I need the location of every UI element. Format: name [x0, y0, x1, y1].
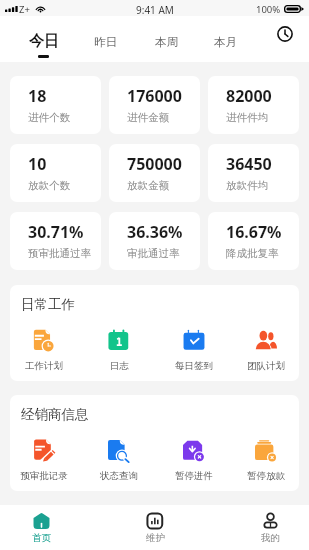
- staticText: 日常工作: [21, 296, 75, 313]
- staticText: 预审批记录: [20, 470, 68, 482]
- button[interactable]: 每日签到: [167, 321, 221, 373]
- staticText: 状态查询: [100, 470, 138, 482]
- button[interactable]: 10: [10, 144, 101, 202]
- staticText: 36450: [226, 153, 272, 175]
- button[interactable]: 暂停放款: [239, 431, 293, 483]
- button[interactable]: 工作计划: [17, 321, 71, 373]
- button[interactable]: 82000: [208, 76, 299, 134]
- button[interactable]: 30.71%: [10, 212, 101, 270]
- staticText: 18: [28, 85, 47, 107]
- staticText: 昨日: [94, 35, 117, 49]
- staticText: 放款件均: [226, 179, 268, 192]
- staticText: 进件件均: [226, 111, 268, 124]
- staticText: Z+: [19, 3, 30, 16]
- staticText: 经销商信息: [21, 406, 89, 423]
- button[interactable]: 今日: [27, 16, 61, 62]
- staticText: 暂停放款: [247, 470, 285, 482]
- button[interactable]: 暂停进件: [167, 431, 221, 483]
- staticText: 16.67%: [226, 221, 282, 243]
- staticText: 本月: [214, 35, 237, 49]
- button[interactable]: 36450: [208, 144, 299, 202]
- button[interactable]: 首页: [15, 505, 67, 550]
- button[interactable]: 团队计划: [239, 321, 293, 373]
- staticText: 首页: [32, 532, 51, 544]
- staticText: 750000: [127, 153, 182, 175]
- staticText: 工作计划: [25, 360, 63, 372]
- button[interactable]: 日志: [92, 321, 146, 373]
- staticText: 176000: [127, 85, 182, 107]
- button[interactable]: History: [276, 25, 293, 42]
- button[interactable]: 36.36%: [109, 212, 200, 270]
- staticText: 预审批通过率: [28, 247, 91, 260]
- button[interactable]: 预审批记录: [17, 431, 71, 483]
- button[interactable]: 我的: [244, 505, 296, 550]
- staticText: 100%: [256, 3, 281, 16]
- staticText: 放款个数: [28, 179, 70, 192]
- button[interactable]: 18: [10, 76, 101, 134]
- staticText: 日志: [110, 360, 129, 372]
- staticText: 9:41 AM: [136, 3, 174, 17]
- staticText: 30.71%: [28, 221, 84, 243]
- staticText: 10: [28, 153, 47, 175]
- button[interactable]: 750000: [109, 144, 200, 202]
- button[interactable]: 176000: [109, 76, 200, 134]
- button[interactable]: 本月: [210, 16, 240, 62]
- staticText: 团队计划: [247, 360, 285, 372]
- staticText: 进件金额: [127, 111, 169, 124]
- button[interactable]: 状态查询: [92, 431, 146, 483]
- button[interactable]: 维护: [129, 505, 181, 550]
- staticText: 36.36%: [127, 221, 183, 243]
- staticText: 暂停进件: [175, 470, 213, 482]
- staticText: 我的: [261, 532, 280, 544]
- staticText: 每日签到: [175, 360, 213, 372]
- button[interactable]: 16.67%: [208, 212, 299, 270]
- button[interactable]: 本周: [151, 16, 181, 62]
- staticText: 降成批复率: [226, 247, 279, 260]
- staticText: 放款金额: [127, 179, 169, 192]
- staticText: 维护: [146, 532, 165, 544]
- staticText: 82000: [226, 85, 272, 107]
- staticText: 审批通过率: [127, 247, 180, 260]
- staticText: 进件个数: [28, 111, 70, 124]
- staticText: 本周: [155, 35, 178, 49]
- button[interactable]: 昨日: [90, 16, 120, 62]
- staticText: 今日: [29, 32, 59, 51]
